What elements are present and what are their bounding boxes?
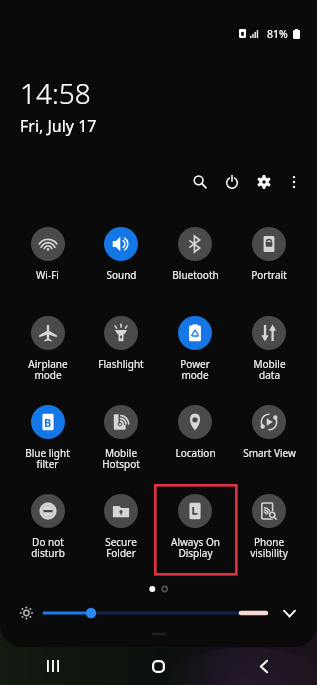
button[interactable]: Recents: [0, 647, 105, 685]
staticText: Wi-Fi: [36, 268, 59, 282]
button[interactable]: Portrait: [232, 210, 306, 299]
staticText: Fri, July 17: [20, 115, 97, 137]
button[interactable]: Flashlight: [84, 299, 158, 388]
staticText: Secure Folder: [105, 535, 137, 560]
button[interactable]: Do not disturb: [11, 477, 84, 566]
staticText: Always On Display: [171, 535, 220, 560]
button[interactable]: Collapse panel: [139, 629, 179, 639]
button[interactable]: Back: [211, 647, 317, 685]
staticText: Flashlight: [98, 357, 144, 371]
button[interactable]: Settings: [252, 170, 276, 194]
button[interactable]: Bluetooth: [158, 210, 232, 299]
staticText: Blue light filter: [25, 446, 70, 471]
staticText: Bluetooth: [172, 268, 219, 282]
button[interactable]: Airplane mode: [11, 299, 84, 388]
staticText: Portrait: [251, 268, 287, 282]
button[interactable]: More options: [282, 170, 306, 194]
button[interactable]: Location: [158, 388, 232, 477]
staticText: Do not disturb: [31, 535, 65, 560]
button[interactable]: Search: [188, 170, 212, 194]
staticText: Mobile data: [253, 357, 286, 382]
staticText: Power mode: [180, 357, 210, 382]
staticText: 81%: [267, 27, 288, 41]
button[interactable]: Phone visibility: [232, 477, 306, 566]
button[interactable]: Expand quick settings: [277, 601, 301, 625]
staticText: 14:58: [20, 74, 91, 112]
staticText: B: [44, 415, 52, 430]
staticText: Phone visibility: [250, 535, 288, 560]
button[interactable]: Sound: [84, 210, 158, 299]
button[interactable]: B: [11, 388, 84, 477]
button[interactable]: Power off: [220, 170, 244, 194]
button[interactable]: Smart View: [232, 388, 306, 477]
button[interactable]: Secure Folder: [84, 477, 158, 566]
staticText: Sound: [106, 268, 137, 282]
button[interactable]: Home: [105, 647, 211, 685]
button[interactable]: Always On Display: [158, 477, 232, 566]
staticText: Mobile Hotspot: [102, 446, 140, 471]
staticText: Smart View: [243, 446, 296, 460]
button[interactable]: Mobile Hotspot: [84, 388, 158, 477]
button[interactable]: Wi-Fi: [11, 210, 84, 299]
button[interactable]: Power mode: [158, 299, 232, 388]
staticText: Location: [175, 446, 216, 460]
staticText: Airplane mode: [28, 357, 68, 382]
button[interactable]: Mobile data: [232, 299, 306, 388]
